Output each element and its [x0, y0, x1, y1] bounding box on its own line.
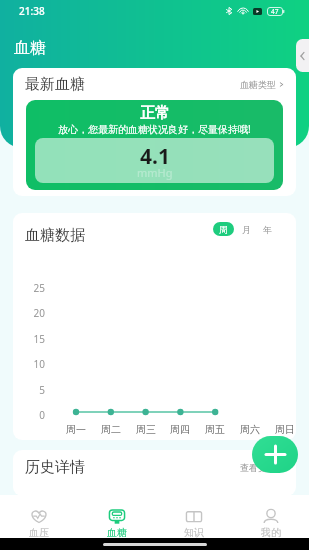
staticText: 最新血糖: [25, 75, 85, 94]
staticText: 4.1: [140, 142, 170, 171]
staticText: 20: [19, 306, 45, 320]
staticText: 周二: [94, 423, 128, 436]
staticText: 21:38: [19, 4, 45, 18]
staticText: 周四: [163, 423, 197, 436]
staticText: mmHg: [137, 165, 173, 180]
staticText: 周六: [233, 423, 267, 436]
staticText: 15: [19, 332, 45, 346]
button[interactable]: 查看更多: [240, 462, 284, 473]
staticText: 年: [263, 224, 272, 235]
button[interactable]: 血糖类型: [240, 79, 284, 90]
staticText: 周: [219, 224, 228, 235]
staticText: 周五: [198, 423, 232, 436]
staticText: 25: [19, 281, 45, 295]
staticText: 周日: [268, 423, 296, 436]
staticText: 月: [242, 224, 251, 235]
staticText: 查看更多: [240, 462, 276, 473]
button[interactable]: 血压: [0, 495, 78, 538]
staticText: 历史详情: [25, 458, 85, 477]
button[interactable]: 血糖: [78, 495, 155, 538]
staticText: 周一: [59, 423, 93, 436]
button[interactable]: Open side panel: [296, 39, 309, 72]
button[interactable]: 我的: [232, 495, 309, 538]
staticText: 血糖: [14, 38, 46, 58]
staticText: 10: [19, 357, 45, 371]
staticText: 血糖类型: [240, 79, 276, 90]
button[interactable]: 月: [238, 221, 254, 237]
staticText: 血糖: [107, 526, 127, 538]
staticText: 我的: [261, 526, 281, 538]
staticText: 血压: [29, 526, 49, 538]
staticText: 周三: [129, 423, 163, 436]
staticText: 47: [271, 7, 279, 16]
staticText: 正常: [140, 104, 170, 123]
staticText: 血糖数据: [25, 226, 85, 245]
button[interactable]: 周: [213, 222, 234, 236]
staticText: 放心，您最新的血糖状况良好，尽量保持哦!: [58, 122, 251, 136]
staticText: 5: [19, 383, 45, 397]
button[interactable]: Add blood glucose record: [252, 436, 298, 473]
button[interactable]: 年: [259, 221, 275, 237]
staticText: 知识: [184, 526, 204, 538]
staticText: 0: [19, 408, 45, 422]
button[interactable]: 知识: [155, 495, 232, 538]
